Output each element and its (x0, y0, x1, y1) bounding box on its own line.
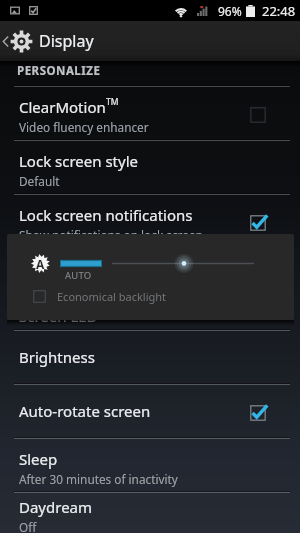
staticText: Show notifications on lock screen (19, 227, 203, 243)
button[interactable]: Back (0, 21, 300, 61)
staticText: Lock screen style (19, 151, 138, 171)
staticText: TM (106, 96, 119, 108)
button[interactable]: Unchecked (250, 107, 266, 123)
button[interactable]: Screen LED (0, 303, 300, 329)
staticText: Off (19, 519, 37, 533)
button[interactable]: ClearMotion (0, 87, 300, 139)
button[interactable]: Brightness (0, 331, 300, 383)
staticText: ClearMotion (19, 97, 106, 117)
staticText: Screen LED (19, 306, 98, 326)
button[interactable]: Lock screen style (0, 141, 300, 193)
button[interactable]: Lock screen notifications (0, 195, 300, 247)
staticText: Display (39, 30, 94, 52)
staticText: Auto-rotate screen (19, 401, 151, 421)
button[interactable]: Daydream (0, 493, 300, 533)
staticText: AUTO (65, 269, 92, 282)
staticText: Default (19, 173, 60, 189)
staticText: Wallpaper (19, 265, 91, 285)
staticText: Lock screen notifications (19, 205, 193, 225)
button[interactable]: Economical backlight (7, 281, 294, 312)
staticText: Economical backlight (57, 289, 167, 304)
button[interactable]: Sleep (0, 439, 300, 491)
staticText: After 30 minutes of inactivity (19, 471, 178, 487)
staticText: Brightness (19, 347, 95, 367)
staticText: Video fluency enhancer (19, 119, 149, 135)
staticText: 22:48 (262, 2, 296, 20)
other: Back (2, 34, 9, 49)
button[interactable]: Auto-rotate screen (0, 385, 300, 437)
button[interactable]: Checked (250, 215, 266, 231)
button[interactable]: Brightness (7, 234, 294, 289)
staticText: Daydream (19, 497, 93, 517)
button[interactable]: Wallpaper (0, 249, 300, 301)
staticText: Sleep (19, 449, 58, 469)
staticText: 96% (218, 3, 242, 19)
staticText: A (36, 256, 45, 272)
button[interactable]: Checked (250, 405, 266, 421)
staticText: PERSONALIZE (17, 63, 101, 79)
